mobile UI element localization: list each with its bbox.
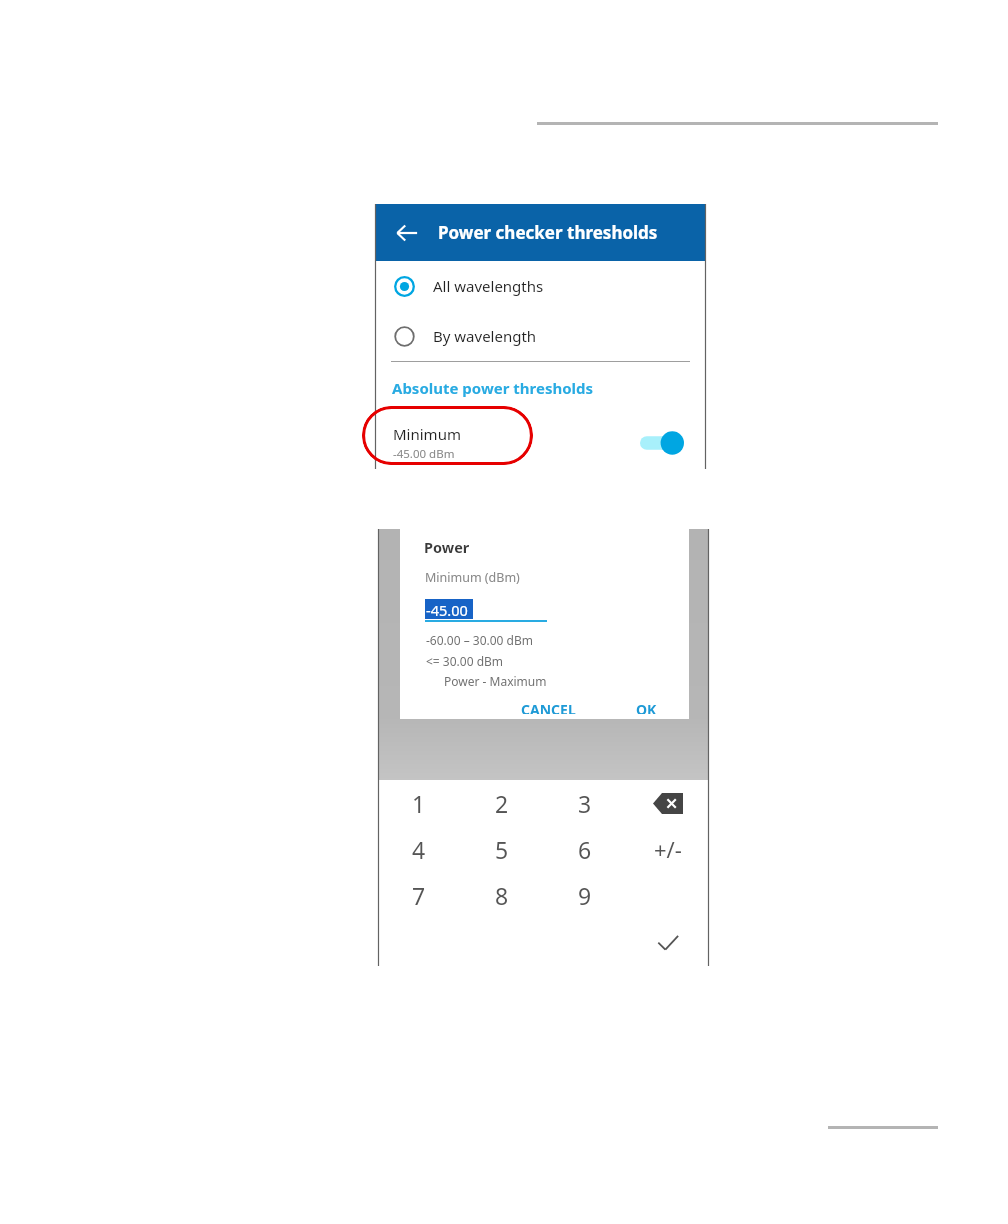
staticText: Minimum (dBm) — [425, 569, 520, 586]
button[interactable]: 1 — [378, 780, 460, 826]
button[interactable]: 3 — [543, 780, 626, 826]
staticText: <= 30.00 dBm — [426, 653, 504, 669]
staticText: -45.00 — [426, 600, 468, 620]
button[interactable]: Plus minus — [626, 826, 709, 872]
button[interactable]: 9 — [543, 872, 626, 919]
button[interactable]: Back — [392, 218, 422, 248]
button[interactable]: Back — [375, 204, 706, 261]
button[interactable]: 8 — [460, 872, 543, 919]
staticText: OK — [636, 700, 657, 714]
staticText: 8 — [495, 880, 509, 911]
staticText: Minimum — [393, 424, 461, 444]
button[interactable]: Minimum threshold enabled — [640, 430, 684, 456]
staticText: 1 — [412, 788, 426, 819]
button[interactable]: Confirm — [626, 919, 709, 966]
staticText: 9 — [578, 880, 592, 911]
staticText: Power - Maximum — [444, 673, 547, 689]
staticText: Power — [424, 537, 470, 557]
button[interactable]: 2 — [460, 780, 543, 826]
button[interactable]: 6 — [543, 826, 626, 872]
staticText: 2 — [495, 788, 509, 819]
button[interactable]: 7 — [378, 872, 460, 919]
button[interactable]: OK — [628, 695, 665, 719]
button[interactable]: All wavelengths — [375, 261, 706, 311]
staticText: Power checker thresholds — [438, 221, 658, 244]
button[interactable]: CANCEL — [513, 695, 584, 719]
staticText: +/- — [654, 834, 682, 864]
button[interactable]: Minimum — [375, 417, 706, 469]
staticText: 5 — [495, 834, 509, 865]
staticText: -60.00 – 30.00 dBm — [426, 632, 533, 648]
staticText: Absolute power thresholds — [392, 378, 594, 398]
button[interactable]: 5 — [460, 826, 543, 872]
button[interactable]: By wavelength — [375, 311, 706, 361]
staticText: All wavelengths — [433, 276, 544, 296]
staticText: 6 — [578, 834, 592, 865]
staticText: 3 — [578, 788, 592, 819]
staticText: 7 — [412, 880, 426, 911]
staticText: 4 — [412, 834, 426, 865]
staticText: By wavelength — [433, 326, 537, 346]
button[interactable]: Backspace — [626, 780, 709, 826]
staticText: -45.00 dBm — [393, 446, 455, 462]
button[interactable] — [378, 919, 460, 966]
staticText: CANCEL — [521, 700, 576, 714]
button[interactable]: 4 — [378, 826, 460, 872]
